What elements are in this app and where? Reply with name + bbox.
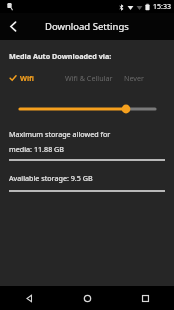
staticText: Available storage: 9.5 GB <box>9 173 93 183</box>
staticText: 15:33 <box>153 2 171 12</box>
button[interactable]: Back <box>0 13 27 40</box>
staticText: Never <box>124 73 145 83</box>
button[interactable]: Maximum storage slider <box>0 102 174 116</box>
staticText: Download Settings <box>45 20 129 33</box>
button[interactable]: Home <box>58 286 116 310</box>
staticText: Wifi & Cellular <box>65 73 113 83</box>
staticText: Maximum storage allowed for <box>9 129 111 139</box>
staticText: Media Auto Downloaded via: <box>9 51 112 61</box>
button[interactable]: Recents <box>116 286 174 310</box>
button[interactable]: Never <box>124 73 145 83</box>
staticText: Wifi <box>20 73 35 83</box>
button[interactable]: Wifi & Cellular <box>65 73 113 83</box>
staticText: media: 11.88 GB <box>9 144 65 154</box>
button[interactable]: Back <box>0 286 58 310</box>
button[interactable]: Wifi <box>9 73 35 83</box>
